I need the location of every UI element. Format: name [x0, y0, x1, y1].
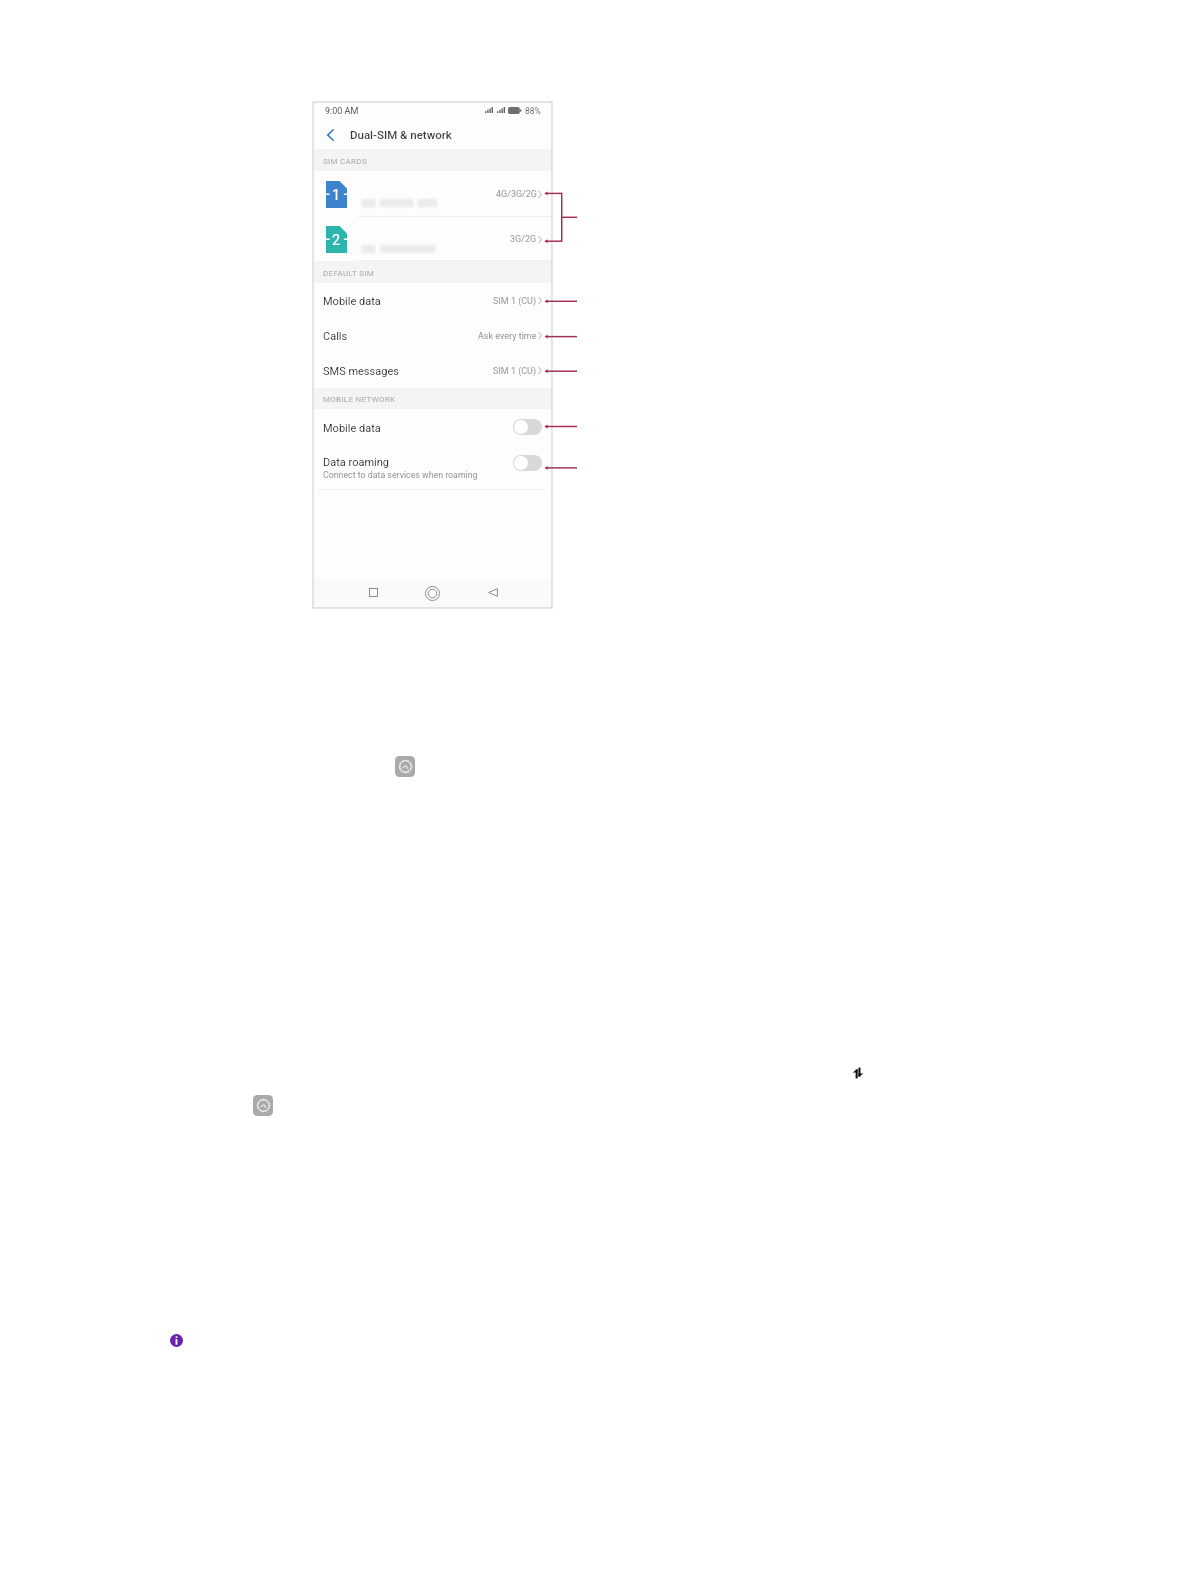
staticText: Calls [323, 330, 348, 343]
staticText: 1 [332, 187, 341, 204]
staticText: MOBILE NETWORK [323, 395, 396, 404]
staticText: DEFAULT SIM [323, 269, 374, 278]
button[interactable]: Settings [395, 756, 415, 777]
staticText: Dual-SIM & network [350, 128, 452, 141]
button[interactable]: Calls [313, 318, 552, 353]
button[interactable]: Back [320, 120, 340, 149]
button[interactable]: Info [170, 1334, 183, 1347]
button[interactable]: 2 [313, 217, 552, 261]
button[interactable]: SMS messages [313, 353, 552, 388]
staticText: Mobile data [323, 422, 381, 435]
button[interactable]: Data roaming [313, 444, 552, 489]
staticText: Mobile data [323, 295, 381, 308]
staticText: 4G/3G/2G [496, 189, 537, 200]
staticText: SMS messages [323, 365, 399, 378]
staticText: SIM 1 (CU) [493, 366, 537, 377]
button[interactable]: Mobile data [313, 283, 552, 318]
button[interactable]: Toggle [513, 455, 542, 471]
button[interactable]: Home [419, 578, 445, 608]
staticText: 9:00 AM [325, 106, 359, 117]
button[interactable]: Settings [253, 1095, 273, 1116]
staticText: Connect to data services when roaming [323, 470, 478, 480]
button[interactable]: Mobile data [850, 1065, 865, 1080]
button[interactable]: Recents [360, 578, 386, 607]
button[interactable]: Mobile data [313, 409, 552, 444]
staticText: Data roaming [323, 456, 389, 469]
staticText: SIM 1 (CU) [493, 296, 537, 307]
button[interactable]: Back [480, 578, 506, 607]
staticText: 3G/2G [510, 234, 537, 245]
button[interactable]: 1 [313, 171, 552, 217]
staticText: 2 [332, 232, 341, 249]
button[interactable]: Toggle [513, 419, 542, 435]
staticText: 88% [525, 106, 541, 116]
staticText: Ask every time [478, 331, 537, 342]
staticText: SIM CARDS [323, 157, 367, 166]
